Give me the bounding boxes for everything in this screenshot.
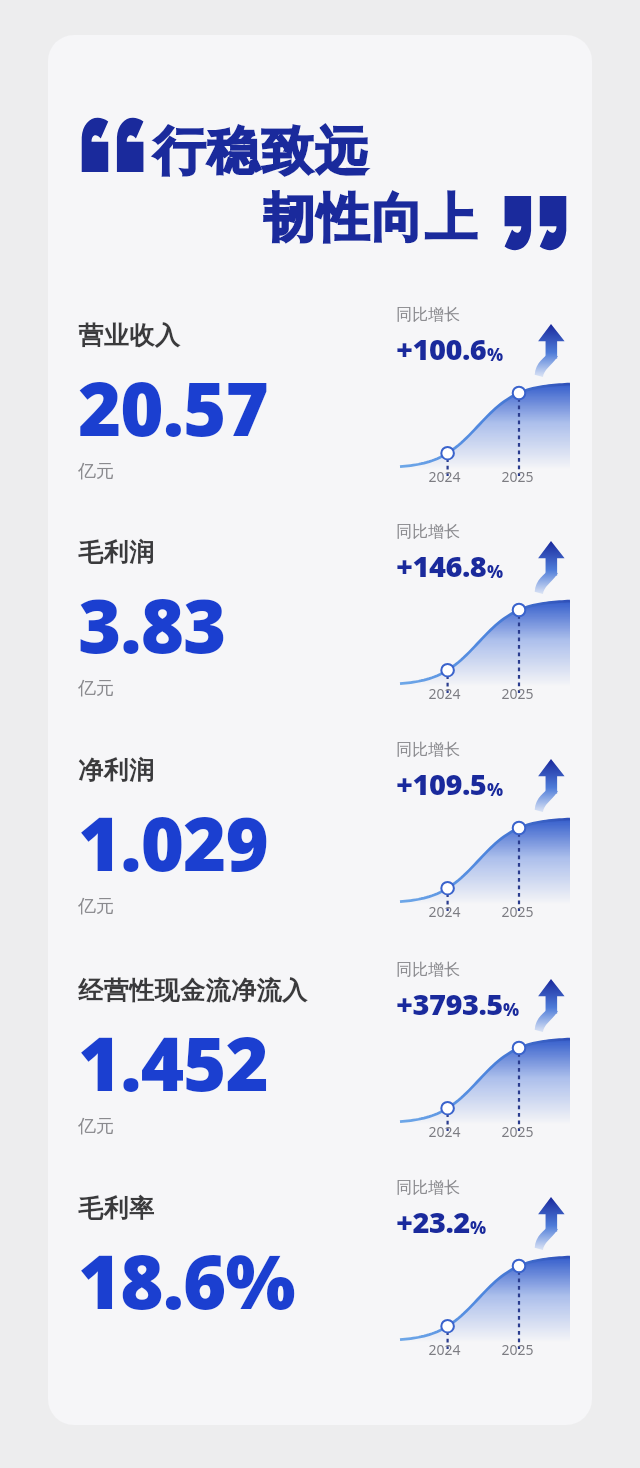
- button[interactable]: 同比增长: [396, 960, 572, 1150]
- other: Growth up: [534, 1196, 568, 1250]
- staticText: %: [487, 560, 504, 583]
- staticText: 亿元: [78, 460, 114, 483]
- staticText: +146.8: [396, 546, 487, 585]
- staticText: 韧性向上: [262, 186, 478, 252]
- other: Closing quote: [504, 196, 568, 252]
- button[interactable]: 同比增长: [396, 305, 572, 495]
- staticText: 20.57: [78, 357, 268, 458]
- staticText: 同比增长: [396, 960, 460, 980]
- staticText: 2024: [428, 902, 461, 921]
- other: Growth up: [534, 978, 568, 1032]
- staticText: 2024: [428, 1340, 461, 1359]
- staticText: +100.6: [396, 329, 487, 368]
- other: Growth up: [534, 758, 568, 812]
- staticText: +3793.5: [396, 984, 503, 1023]
- button[interactable]: 毛利润: [78, 537, 378, 700]
- staticText: 2024: [428, 467, 461, 486]
- staticText: 行稳致远: [152, 119, 368, 185]
- other: Growth up: [534, 540, 568, 594]
- staticText: 2025: [501, 1340, 534, 1359]
- button[interactable]: 同比增长: [396, 740, 572, 930]
- staticText: 同比增长: [396, 740, 460, 760]
- staticText: 亿元: [78, 1115, 114, 1138]
- button[interactable]: 净利润: [78, 755, 378, 918]
- staticText: 2025: [501, 1122, 534, 1141]
- staticText: 2025: [501, 467, 534, 486]
- staticText: 同比增长: [396, 305, 460, 325]
- staticText: 18.6%: [78, 1230, 295, 1331]
- staticText: 2024: [428, 1122, 461, 1141]
- button[interactable]: 毛利率: [78, 1193, 378, 1331]
- staticText: 亿元: [78, 677, 114, 700]
- button[interactable]: 营业收入: [78, 320, 378, 483]
- staticText: %: [487, 778, 504, 801]
- staticText: +23.2: [396, 1202, 470, 1241]
- staticText: %: [487, 343, 504, 366]
- staticText: 毛利率: [78, 1193, 155, 1224]
- staticText: 1.029: [78, 792, 268, 893]
- other: Opening quote: [80, 116, 144, 172]
- other: Growth up: [534, 323, 568, 377]
- staticText: +109.5: [396, 764, 487, 803]
- staticText: 毛利润: [78, 537, 155, 568]
- button[interactable]: 经营性现金流净流入: [78, 975, 378, 1138]
- staticText: 亿元: [78, 895, 114, 918]
- staticText: 2024: [428, 684, 461, 703]
- staticText: 同比增长: [396, 1178, 460, 1198]
- staticText: %: [470, 1216, 487, 1239]
- staticText: 1.452: [78, 1012, 268, 1113]
- staticText: 营业收入: [78, 320, 180, 351]
- button[interactable]: 同比增长: [396, 522, 572, 712]
- staticText: 同比增长: [396, 522, 460, 542]
- staticText: 2025: [501, 684, 534, 703]
- staticText: 2025: [501, 902, 534, 921]
- button[interactable]: 同比增长: [396, 1178, 572, 1368]
- staticText: %: [503, 998, 520, 1021]
- staticText: 经营性现金流净流入: [78, 975, 308, 1006]
- staticText: 3.83: [78, 574, 226, 675]
- staticText: 净利润: [78, 755, 155, 786]
